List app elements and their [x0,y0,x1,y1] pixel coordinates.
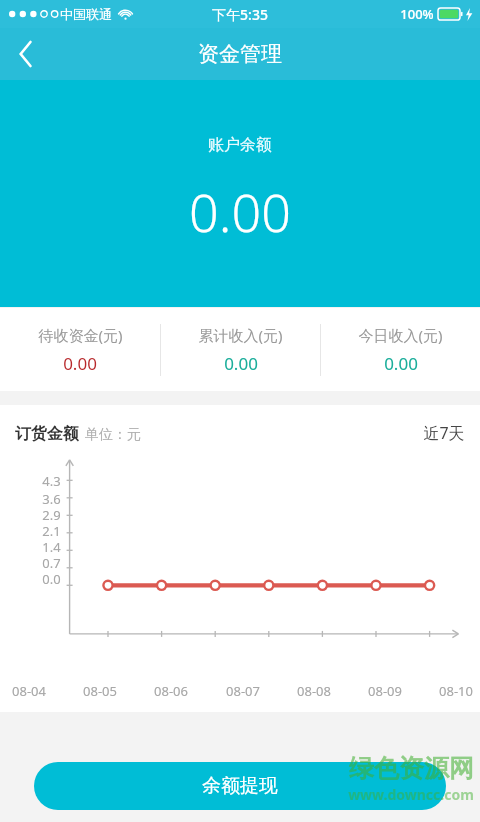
staticText: 近7天 [423,422,465,444]
button[interactable]: 今日收入(元) [321,319,480,381]
staticText: 08-08 [297,682,331,700]
staticText: 4.3 [42,472,61,489]
staticText: 08-05 [83,682,117,700]
button[interactable]: 待收资金(元) [0,319,160,381]
staticText: 0.00 [384,352,418,375]
staticText: 待收资金(元) [38,325,123,345]
staticText: 今日收入(元) [358,325,443,345]
staticText: 中国联通 [60,6,112,22]
staticText: 08-10 [439,682,473,700]
staticText: 08-04 [12,682,46,700]
staticText: 0.00 [189,176,291,247]
staticText: www.downcc.com [348,785,474,804]
staticText: 08-09 [368,682,402,700]
staticText: 账户余额 [208,135,272,155]
staticText: 1.4 [42,538,61,554]
staticText: 累计收入(元) [198,325,283,345]
staticText: 2.9 [42,506,61,522]
staticText: 0.00 [63,352,97,375]
button[interactable]: 近7天 [423,422,465,444]
staticText: 08-06 [154,682,188,700]
button[interactable]: 余额提现 [34,762,446,810]
staticText: 绿色资源网 [349,753,474,784]
staticText: 0.0 [42,570,61,586]
button[interactable]: Back [0,28,52,80]
staticText: 资金管理 [198,41,282,67]
staticText: 0.00 [224,352,258,375]
staticText: 3.6 [42,490,61,506]
staticText: 100% [400,5,434,23]
staticText: 订货金额 [15,424,79,444]
staticText: 下午5:35 [212,5,268,24]
staticText: 余额提现 [202,774,278,798]
staticText: 2.1 [42,522,61,538]
button[interactable]: 累计收入(元) [161,319,320,381]
staticText: 08-07 [226,682,260,700]
staticText: 单位：元 [85,426,141,444]
staticText: 0.7 [42,554,61,570]
